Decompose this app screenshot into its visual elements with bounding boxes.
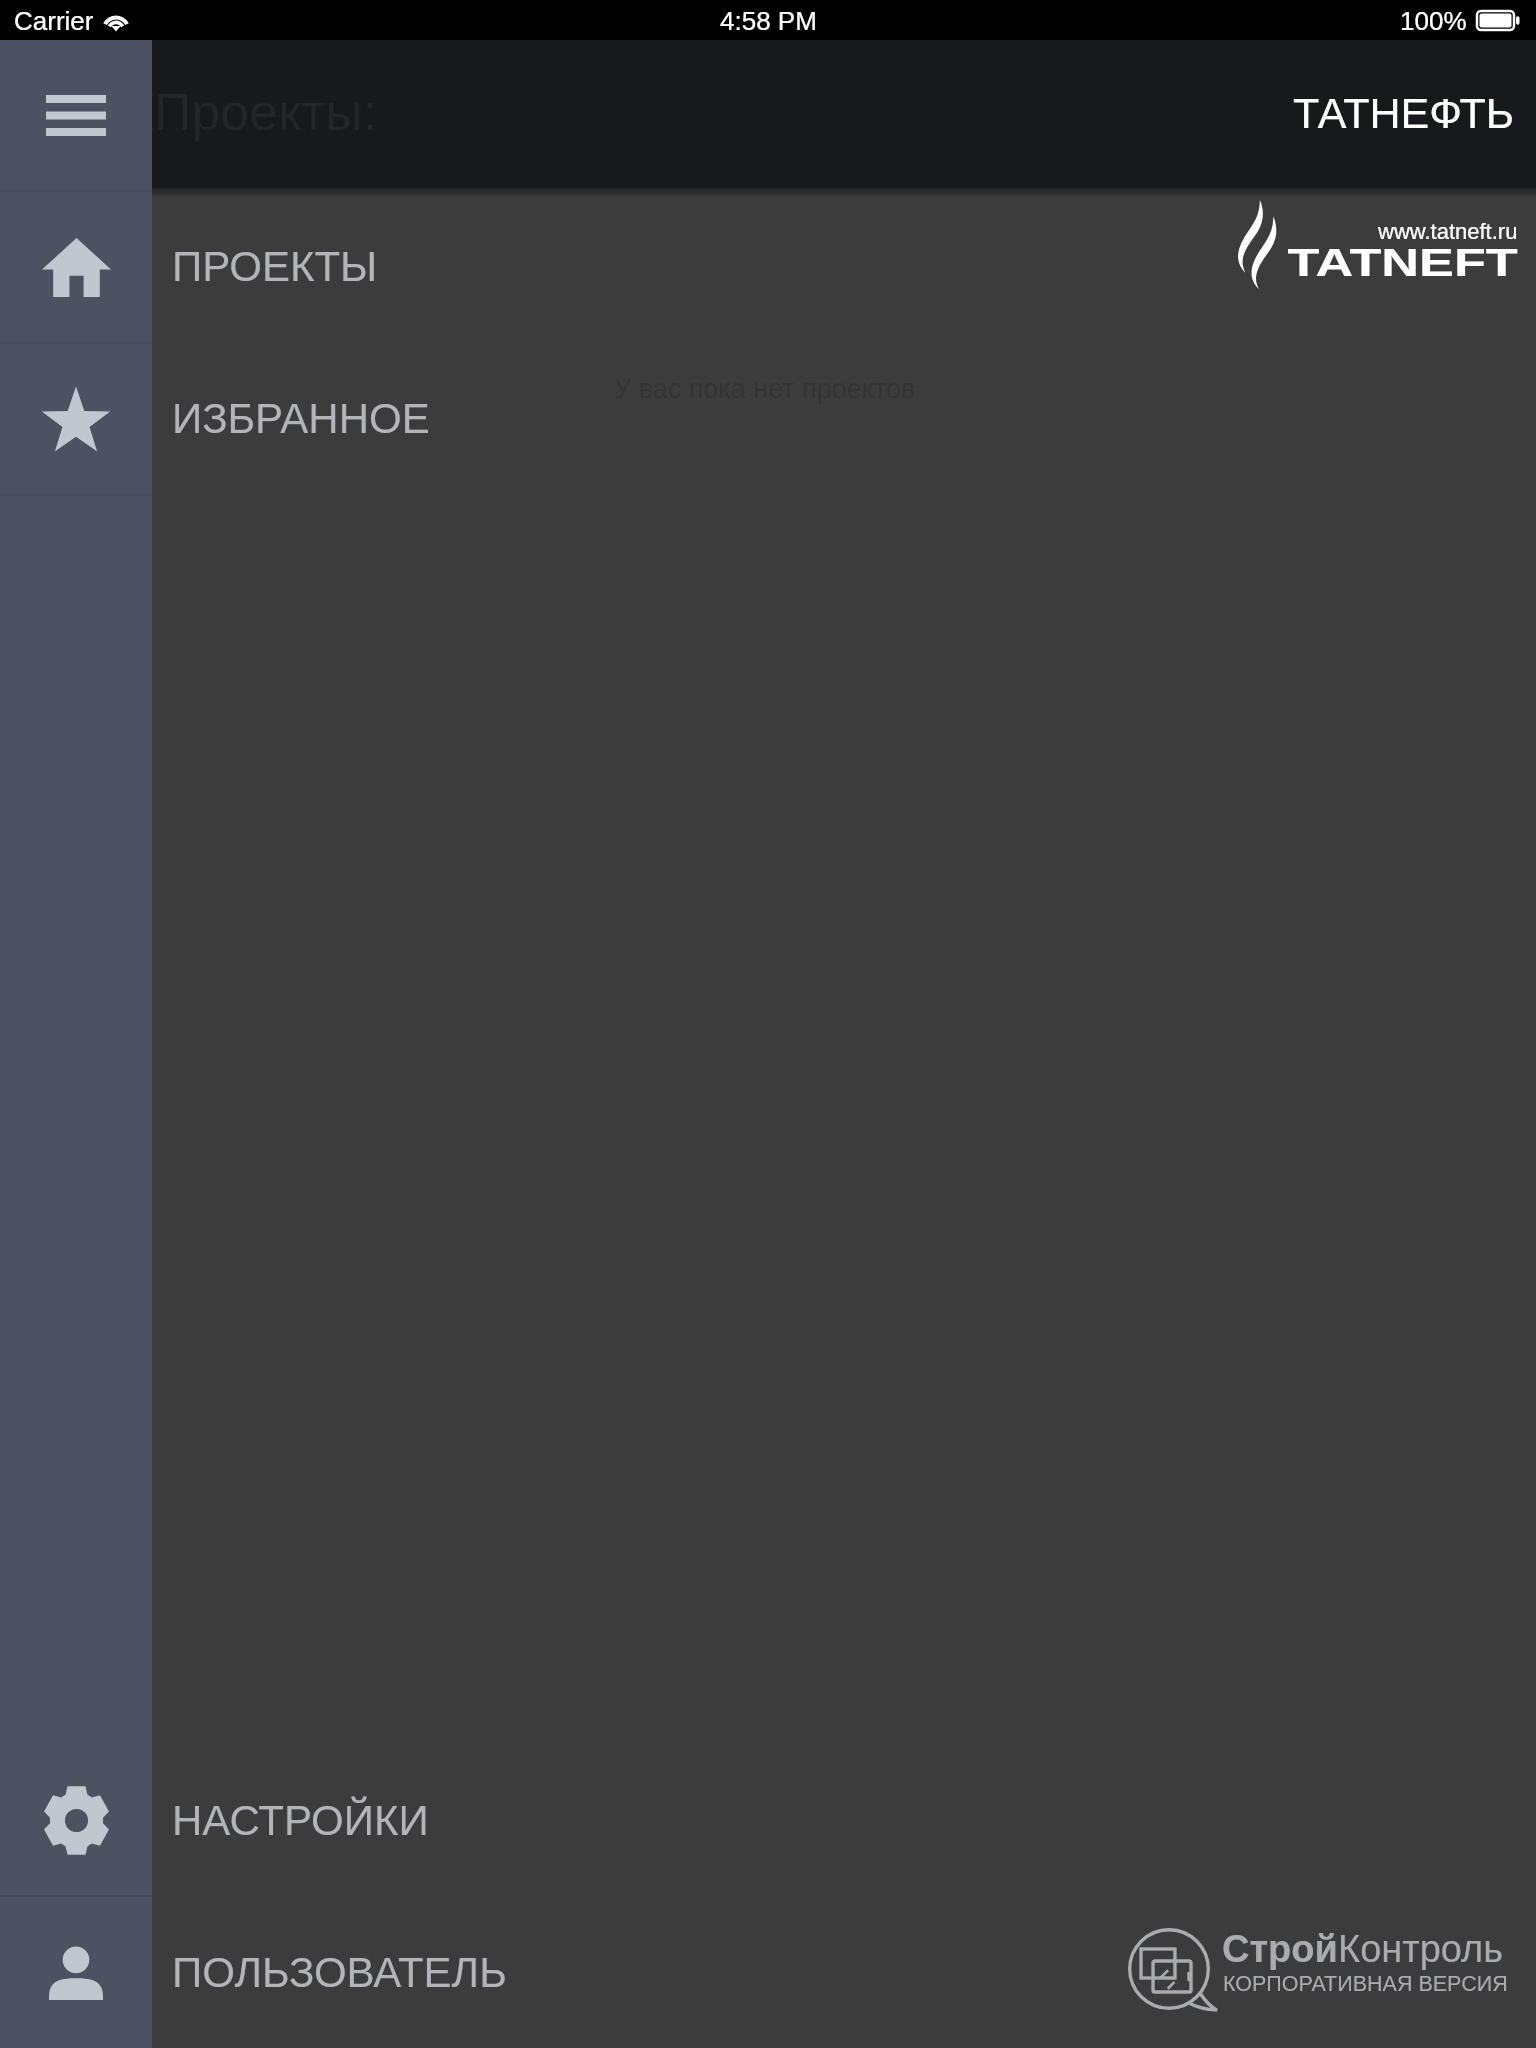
button[interactable]: ПРОЕКТЫ	[172, 190, 1536, 342]
button[interactable]: Home	[0, 192, 152, 342]
staticText: Проекты:	[154, 83, 378, 141]
staticText: КОРПОРАТИВНАЯ ВЕРСИЯ	[1223, 1972, 1508, 1996]
staticText: Контроль	[1338, 1928, 1504, 1970]
button[interactable]: Settings	[0, 1745, 152, 1895]
button[interactable]: НАСТРОЙКИ	[172, 1744, 1536, 1896]
staticText: НАСТРОЙКИ	[172, 1797, 429, 1844]
staticText: Строй	[1222, 1928, 1338, 1970]
staticText: ПОЛЬЗОВАТЕЛЬ	[172, 1949, 507, 1996]
staticText: www.tatneft.ru	[1378, 219, 1518, 244]
staticText: ТАТНЕФТЬ	[1293, 89, 1514, 137]
staticText: У вас пока нет проектов	[614, 374, 916, 404]
button[interactable]: User	[0, 1897, 152, 2048]
button[interactable]: ПОЛЬЗОВАТЕЛЬ	[172, 1896, 1536, 2048]
staticText: ИЗБРАННОЕ	[172, 395, 430, 442]
button[interactable]: Menu	[0, 40, 152, 190]
staticText: 4:58 PM	[720, 6, 817, 35]
staticText: ПРОЕКТЫ	[172, 243, 378, 290]
button[interactable]: Favourites	[0, 344, 152, 494]
button[interactable]: ИЗБРАННОЕ	[172, 342, 1536, 494]
staticText: TATNEFT	[1287, 241, 1518, 285]
staticText: 100%	[1400, 6, 1467, 35]
staticText: Carrier	[14, 6, 94, 35]
